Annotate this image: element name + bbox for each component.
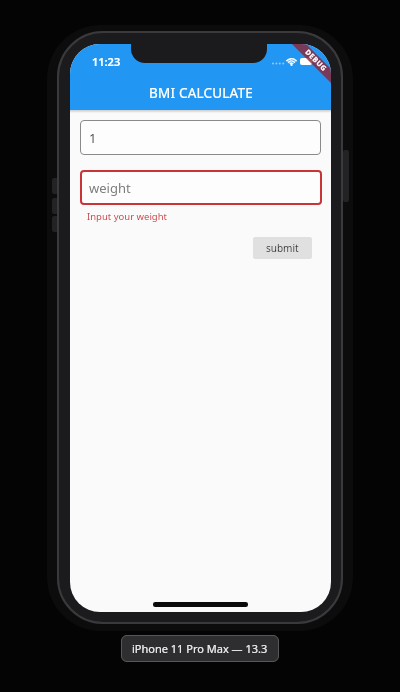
staticText: 1	[89, 129, 97, 147]
staticText: Input your weight	[87, 210, 167, 223]
staticText: BMI CALCULATE	[149, 84, 253, 102]
button[interactable]: weight	[80, 170, 322, 205]
button[interactable]: submit	[253, 237, 312, 259]
staticText: 11:23	[92, 54, 121, 69]
staticText: weight	[89, 179, 131, 197]
staticText: DEBUG	[303, 48, 329, 74]
staticText: iPhone 11 Pro Max — 13.3	[132, 641, 268, 656]
staticText: submit	[266, 241, 299, 255]
button[interactable]: 1	[80, 120, 321, 155]
